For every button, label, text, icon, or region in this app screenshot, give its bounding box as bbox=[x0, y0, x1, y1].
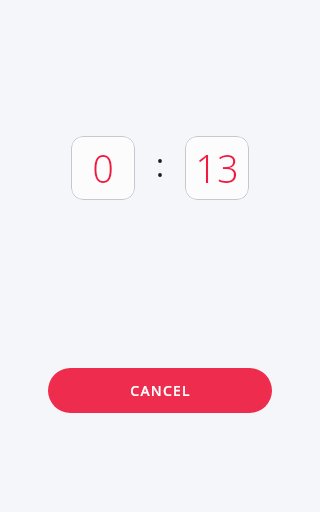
staticText: 13 bbox=[195, 142, 239, 194]
button[interactable]: Seconds bbox=[185, 136, 249, 200]
button[interactable]: Minutes bbox=[71, 136, 135, 200]
staticText: CANCEL bbox=[130, 381, 191, 400]
button[interactable]: CANCEL bbox=[48, 368, 272, 413]
staticText: 0 bbox=[92, 142, 114, 194]
